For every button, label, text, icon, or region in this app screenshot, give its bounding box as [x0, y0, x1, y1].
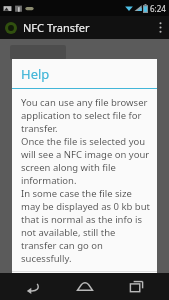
staticText: Once the file is selected you will see a… [21, 135, 150, 187]
staticText: 6:24 [150, 3, 166, 14]
staticText: Ok [78, 276, 91, 289]
staticText: Help [21, 65, 50, 83]
button[interactable]: More options [152, 16, 169, 39]
staticText: In some case the file size may be displa… [21, 187, 150, 265]
staticText: You can use any file browser application… [21, 96, 150, 135]
button[interactable]: Home [67, 273, 103, 300]
button[interactable]: Recent apps [118, 273, 154, 300]
staticText: NFC Transfer [23, 20, 90, 35]
button[interactable]: Ok [12, 272, 157, 293]
button[interactable]: Back [15, 273, 51, 300]
button[interactable] [10, 45, 66, 60]
